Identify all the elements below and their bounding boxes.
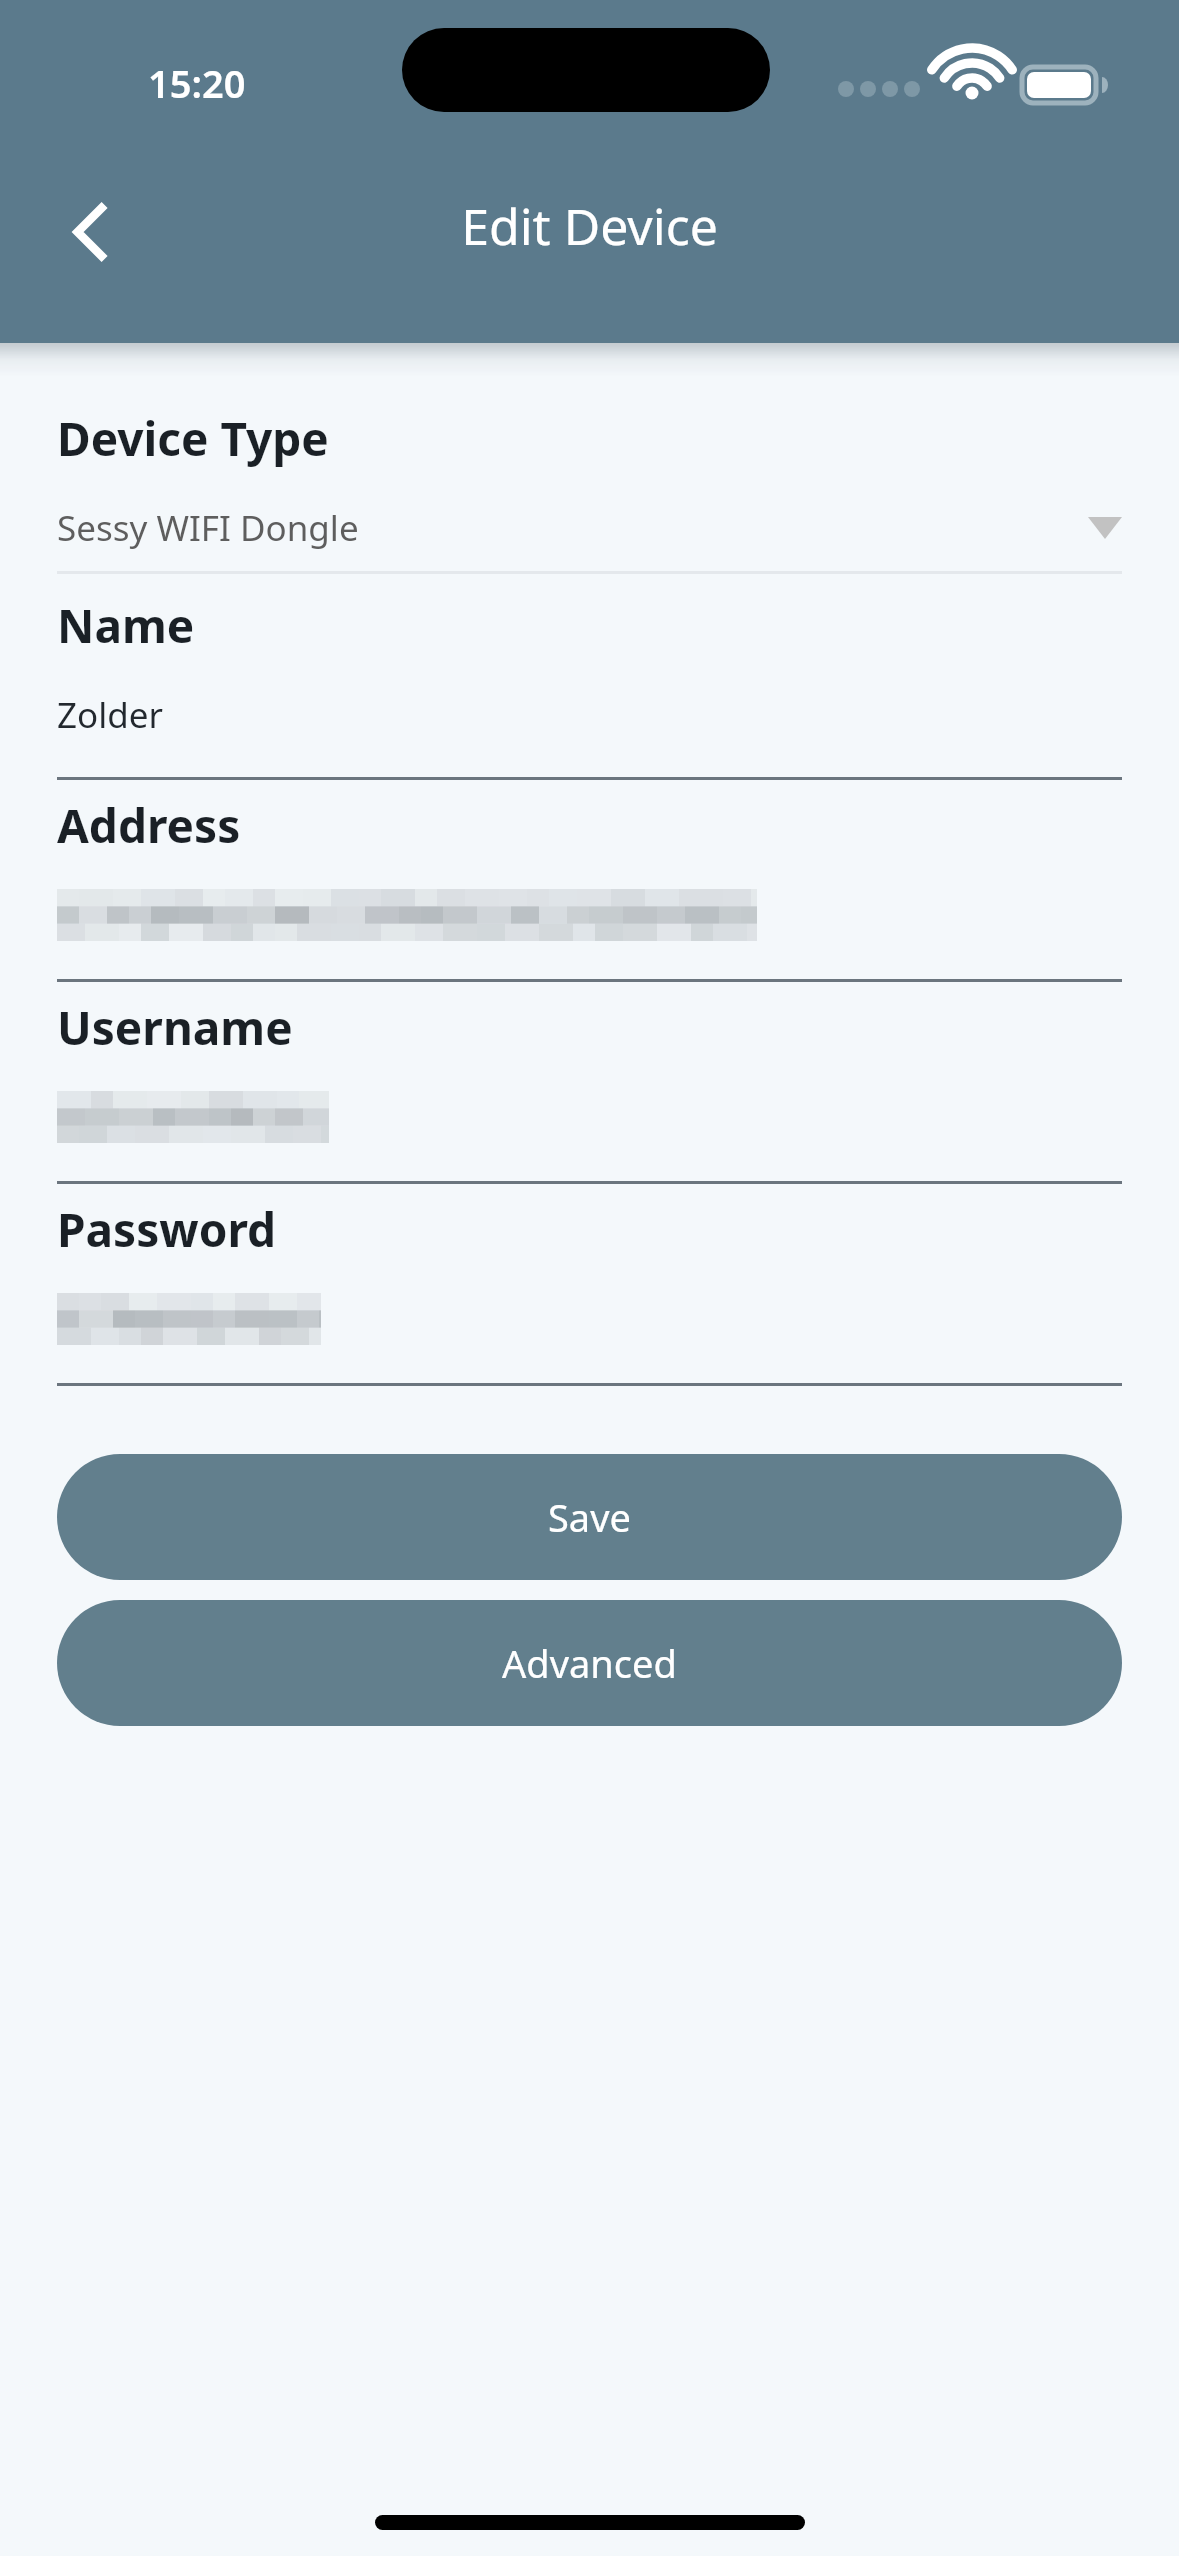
button[interactable]: Sessy WIFI Dongle (57, 504, 1122, 552)
staticText: Name (57, 594, 195, 657)
button[interactable] (57, 1293, 321, 1345)
button[interactable]: Advanced (57, 1600, 1122, 1726)
staticText: 15:20 (148, 57, 246, 109)
button[interactable]: Zolder (57, 691, 163, 739)
staticText: Username (57, 996, 293, 1059)
staticText: Save (548, 1491, 631, 1543)
staticText: Password (57, 1198, 277, 1261)
button[interactable]: Save (57, 1454, 1122, 1580)
staticText: Advanced (502, 1637, 677, 1689)
button[interactable] (57, 889, 757, 941)
staticText: Sessy WIFI Dongle (57, 504, 359, 552)
button[interactable] (57, 1091, 329, 1143)
button[interactable]: Back (28, 168, 156, 296)
staticText: Address (57, 794, 241, 857)
staticText: Device Type (57, 407, 329, 470)
staticText: Edit Device (0, 192, 1179, 260)
